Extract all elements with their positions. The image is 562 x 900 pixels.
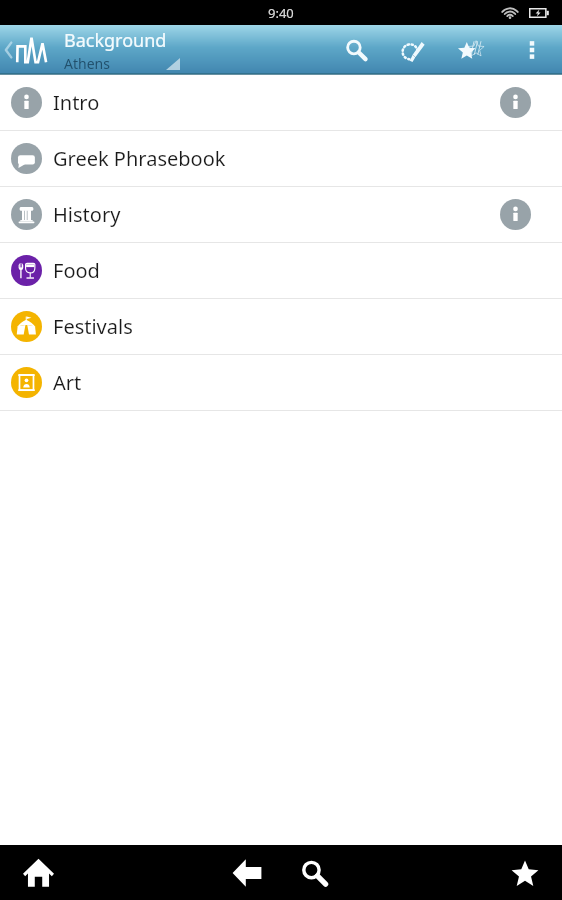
button[interactable]: Favorites xyxy=(445,25,497,75)
button[interactable]: Art xyxy=(0,355,562,411)
staticText: History xyxy=(53,201,121,228)
staticText: Food xyxy=(53,257,100,284)
staticText: Art xyxy=(53,369,82,396)
button[interactable]: More options xyxy=(506,25,558,75)
staticText: Athens xyxy=(64,54,110,73)
staticText: Intro xyxy=(53,89,100,116)
button[interactable]: Search xyxy=(330,25,382,75)
button[interactable]: Favorites xyxy=(497,845,553,900)
button[interactable]: Edit xyxy=(388,25,440,75)
staticText: 9:40 xyxy=(268,4,294,22)
button[interactable]: Festivals xyxy=(0,299,562,355)
button[interactable]: Search xyxy=(286,845,342,900)
staticText: Festivals xyxy=(53,313,133,340)
button[interactable]: History xyxy=(0,187,562,243)
staticText: Greek Phrasebook xyxy=(53,145,226,172)
button[interactable]: Intro xyxy=(0,75,562,131)
button[interactable]: Navigate up xyxy=(0,25,51,75)
staticText: Background xyxy=(64,28,167,53)
button[interactable]: Back xyxy=(219,845,275,900)
button[interactable]: Food xyxy=(0,243,562,299)
button[interactable]: Home xyxy=(10,845,66,900)
button[interactable]: Greek Phrasebook xyxy=(0,131,562,187)
